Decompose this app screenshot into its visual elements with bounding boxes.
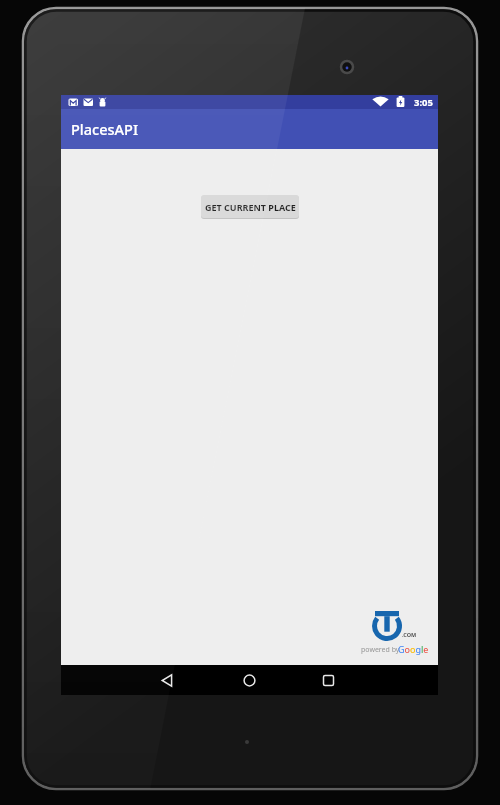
staticText: .COM (402, 631, 417, 638)
staticText: PlacesAPI (71, 119, 139, 139)
button[interactable] (238, 669, 260, 691)
button[interactable] (317, 669, 339, 691)
staticText: 3:05 (414, 96, 433, 109)
staticText: GET CURRENT PLACE (205, 201, 296, 213)
button[interactable]: GET CURRENT PLACE (201, 195, 299, 218)
staticText: powered by (361, 645, 400, 655)
button[interactable] (156, 669, 178, 691)
staticText: Google (398, 643, 429, 655)
